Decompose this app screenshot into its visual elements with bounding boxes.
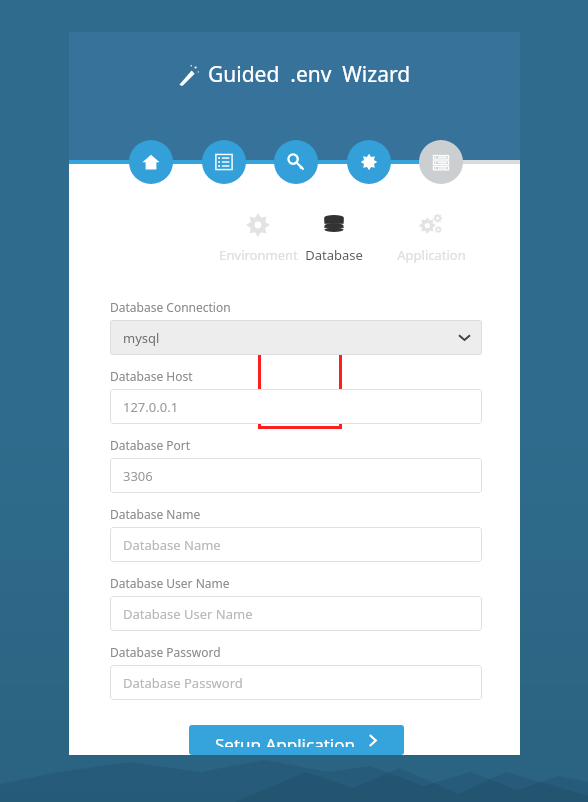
button[interactable]: Settings xyxy=(347,140,391,184)
staticText: 3306 xyxy=(123,467,153,485)
staticText: Database Name xyxy=(123,536,221,554)
staticText: Guided .env Wizard xyxy=(208,60,411,89)
button[interactable]: Application xyxy=(387,212,475,264)
button[interactable]: Setup Application xyxy=(189,725,404,755)
button[interactable]: List xyxy=(202,140,246,184)
staticText: Database User Name xyxy=(110,575,230,591)
staticText: Database Name xyxy=(110,506,201,522)
button[interactable]: Environment xyxy=(214,212,302,264)
staticText: Database Connection xyxy=(110,299,231,315)
button[interactable]: Key xyxy=(274,140,318,184)
button[interactable]: Database xyxy=(300,212,368,264)
staticText: Database Host xyxy=(110,368,193,384)
staticText: Database User Name xyxy=(123,605,253,623)
staticText: 127.0.0.1 xyxy=(123,398,179,416)
button[interactable]: Database User Name xyxy=(110,596,482,631)
staticText: Database xyxy=(305,246,363,264)
staticText: Database Password xyxy=(110,644,221,660)
staticText: Environment xyxy=(219,246,298,264)
button[interactable]: Home xyxy=(129,140,173,184)
staticText: Database Password xyxy=(123,674,243,692)
button[interactable]: Server xyxy=(419,140,463,184)
button[interactable]: 127.0.0.1 xyxy=(110,389,482,424)
button[interactable]: 3306 xyxy=(110,458,482,493)
staticText: Application xyxy=(397,246,466,264)
staticText: Database Port xyxy=(110,437,191,453)
staticText: mysql xyxy=(123,329,160,347)
button[interactable]: Database Name xyxy=(110,527,482,562)
button[interactable] xyxy=(258,346,342,429)
button[interactable]: Database Password xyxy=(110,665,482,700)
staticText: Setup Application xyxy=(215,733,355,747)
button[interactable]: mysql xyxy=(110,320,482,355)
